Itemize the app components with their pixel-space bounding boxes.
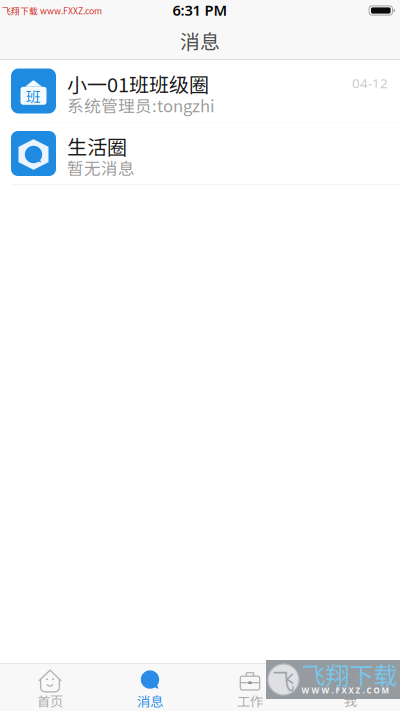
- staticText: W W W . F X X Z . C O M: [301, 685, 389, 696]
- button[interactable]: 班: [0, 60, 400, 122]
- staticText: 我: [343, 691, 356, 710]
- staticText: 消息: [180, 26, 220, 55]
- staticText: 生活圈: [67, 131, 127, 160]
- staticText: 系统管理员:tongzhi: [67, 93, 215, 117]
- staticText: 小一01班班级圈: [67, 69, 209, 98]
- button[interactable]: 工作: [200, 663, 300, 711]
- button[interactable]: 消息: [100, 663, 200, 711]
- staticText: 飞翔下载: [301, 657, 397, 691]
- staticText: 班: [26, 85, 41, 106]
- staticText: 6:31 PM: [172, 0, 227, 20]
- button[interactable]: 我: [300, 663, 400, 711]
- staticText: 飞翔下载 www.FXXZ.com: [2, 4, 102, 17]
- staticText: 暂无消息: [67, 155, 135, 179]
- staticText: 工作: [237, 691, 263, 710]
- staticText: 04-12: [352, 74, 388, 92]
- button[interactable]: 首页: [0, 663, 100, 711]
- staticText: 消息: [137, 691, 163, 710]
- staticText: 首页: [37, 691, 63, 710]
- button[interactable]: 生活圈: [0, 122, 400, 185]
- staticText: 飞: [272, 663, 295, 696]
